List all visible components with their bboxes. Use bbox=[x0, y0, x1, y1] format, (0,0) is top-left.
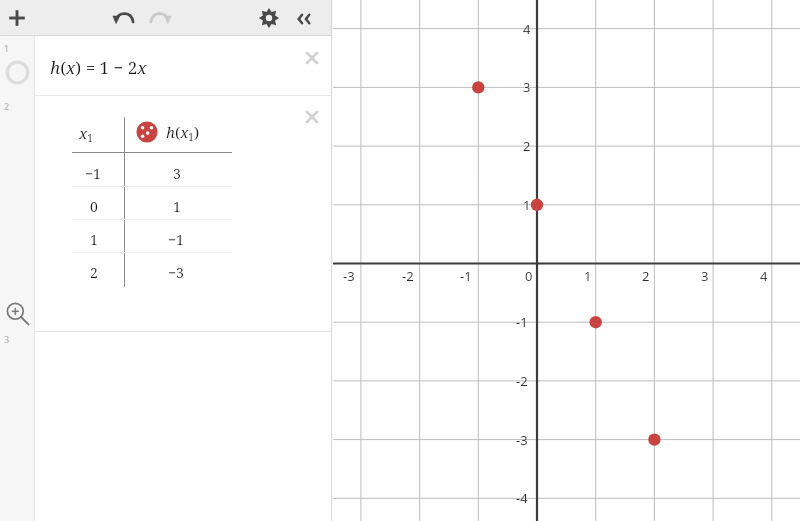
staticText: 0 bbox=[90, 197, 98, 216]
staticText: -2 bbox=[402, 267, 414, 285]
staticText: 2 bbox=[523, 137, 531, 155]
staticText: -2 bbox=[516, 372, 528, 390]
button[interactable]: Add expression bbox=[4, 5, 30, 31]
button[interactable]: Point style bbox=[135, 120, 159, 144]
button[interactable]: Settings bbox=[258, 7, 280, 29]
staticText: 1 bbox=[523, 196, 531, 214]
staticText: −1 bbox=[85, 164, 101, 183]
staticText: h(x1) bbox=[166, 122, 200, 144]
button[interactable]: Redo bbox=[148, 7, 172, 31]
button[interactable]: Delete expression 1 bbox=[301, 47, 323, 69]
staticText: -3 bbox=[343, 267, 355, 285]
staticText: 2 bbox=[642, 267, 650, 285]
staticText: 2 bbox=[90, 263, 98, 282]
staticText: 2 bbox=[4, 100, 10, 112]
staticText: 4 bbox=[760, 267, 768, 285]
button[interactable]: Collapse panel bbox=[292, 7, 316, 31]
staticText: −3 bbox=[168, 263, 184, 282]
staticText: -1 bbox=[516, 313, 528, 331]
staticText: x1 bbox=[79, 123, 93, 145]
staticText: 1 bbox=[90, 230, 98, 249]
staticText: 3 bbox=[523, 78, 531, 96]
button[interactable]: Toggle expression 1 bbox=[5, 60, 30, 85]
staticText: -4 bbox=[516, 489, 528, 507]
staticText: -1 bbox=[460, 267, 472, 285]
staticText: 1 bbox=[584, 267, 592, 285]
staticText: 4 bbox=[523, 20, 531, 38]
button[interactable]: Undo bbox=[112, 7, 136, 31]
button[interactable]: Zoom to fit bbox=[5, 301, 29, 325]
staticText: 3 bbox=[701, 267, 709, 285]
staticText: -3 bbox=[516, 431, 528, 449]
button[interactable]: Delete table bbox=[301, 106, 323, 128]
staticText: 1 bbox=[173, 197, 181, 216]
staticText: 3 bbox=[4, 333, 10, 345]
staticText: 3 bbox=[173, 164, 181, 183]
staticText: 1 bbox=[4, 42, 10, 54]
staticText: −1 bbox=[168, 230, 184, 249]
staticText: h(x) = 1 − 2x bbox=[50, 56, 147, 79]
staticText: 0 bbox=[525, 267, 533, 285]
